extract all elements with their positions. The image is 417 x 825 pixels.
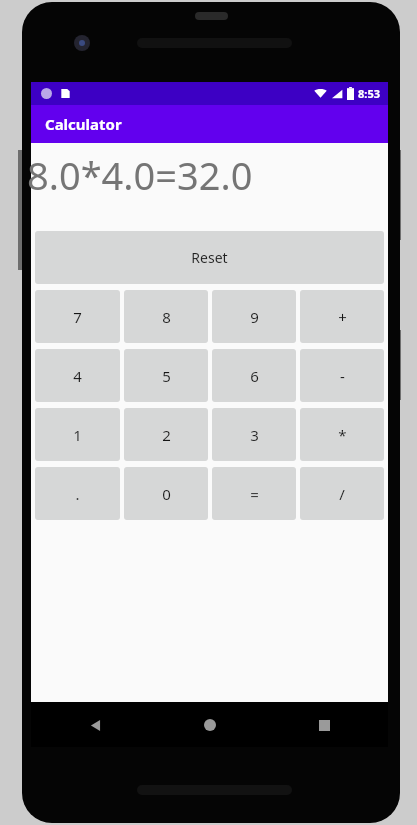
- button[interactable]: .: [35, 467, 120, 520]
- staticText: =: [250, 484, 259, 504]
- button[interactable]: 2: [124, 408, 208, 461]
- button[interactable]: =: [212, 467, 296, 520]
- button[interactable]: 3: [212, 408, 296, 461]
- staticText: 6: [250, 366, 259, 386]
- staticText: 4: [73, 366, 82, 386]
- staticText: 8.0*4.0=32.0: [27, 149, 253, 201]
- staticText: 8: [162, 307, 171, 327]
- button[interactable]: 4: [35, 349, 120, 402]
- button[interactable]: Back: [75, 705, 115, 745]
- staticText: /: [339, 484, 345, 504]
- button[interactable]: /: [300, 467, 384, 520]
- button[interactable]: +: [300, 290, 384, 343]
- button[interactable]: 1: [35, 408, 120, 461]
- button[interactable]: 9: [212, 290, 296, 343]
- button[interactable]: *: [300, 408, 384, 461]
- staticText: .: [75, 484, 80, 504]
- staticText: 7: [73, 307, 82, 327]
- staticText: 1: [73, 425, 82, 445]
- button[interactable]: 0: [124, 467, 208, 520]
- button[interactable]: 8: [124, 290, 208, 343]
- staticText: -: [340, 366, 345, 386]
- staticText: 8:53: [358, 86, 380, 101]
- staticText: 5: [162, 366, 171, 386]
- button[interactable]: 5: [124, 349, 208, 402]
- button[interactable]: Home: [190, 705, 230, 745]
- staticText: 0: [162, 484, 171, 504]
- staticText: 3: [250, 425, 259, 445]
- button[interactable]: -: [300, 349, 384, 402]
- staticText: 9: [250, 307, 259, 327]
- staticText: Calculator: [45, 114, 122, 134]
- staticText: Reset: [191, 248, 228, 267]
- button[interactable]: 7: [35, 290, 120, 343]
- staticText: 2: [162, 425, 171, 445]
- staticText: *: [338, 425, 347, 445]
- staticText: +: [338, 307, 347, 327]
- button[interactable]: 6: [212, 349, 296, 402]
- button[interactable]: Reset: [35, 231, 384, 284]
- button[interactable]: Recent apps: [304, 705, 344, 745]
